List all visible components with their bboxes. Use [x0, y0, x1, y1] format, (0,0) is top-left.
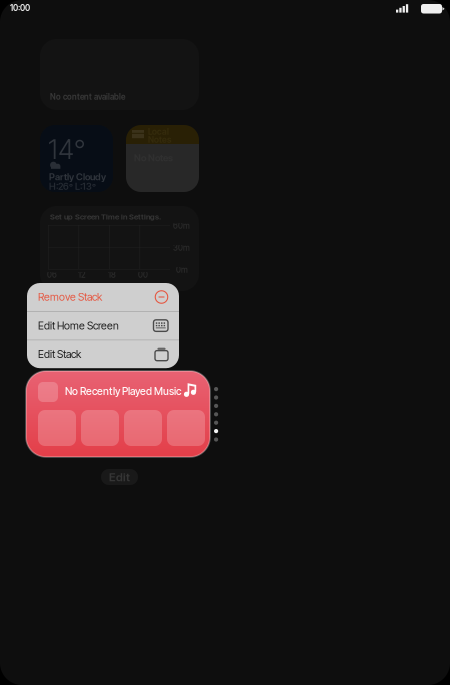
- staticText: 30m: [173, 243, 190, 253]
- staticText: No Recently Played Music: [65, 385, 181, 398]
- staticText: 06: [47, 270, 57, 280]
- staticText: H:26° L:13°: [49, 180, 96, 192]
- staticText: 12: [78, 270, 86, 280]
- staticText: 14°: [48, 133, 85, 166]
- staticText: 0m: [176, 265, 188, 275]
- staticText: Notes: [148, 134, 171, 145]
- staticText: Partly Cloudy: [49, 171, 106, 182]
- button[interactable]: Edit Stack: [27, 340, 179, 368]
- staticText: Edit: [109, 470, 130, 484]
- staticText: No content available: [50, 92, 125, 102]
- staticText: 10:00: [10, 3, 30, 13]
- button[interactable]: Remove Stack: [27, 283, 179, 311]
- staticText: --: [167, 280, 173, 290]
- staticText: Edit Stack: [38, 348, 81, 361]
- button[interactable]: Edit: [101, 469, 138, 485]
- button[interactable]: Edit Home Screen: [27, 312, 179, 340]
- staticText: Set up Screen Time in Settings.: [50, 212, 161, 221]
- staticText: 00: [138, 270, 148, 280]
- staticText: 18: [108, 270, 116, 280]
- staticText: Remove Stack: [38, 291, 102, 303]
- staticText: Edit Home Screen: [38, 319, 119, 332]
- staticText: 60m: [173, 221, 190, 231]
- button[interactable]: No Recently Played Music: [26, 371, 210, 457]
- staticText: Local: [148, 126, 169, 137]
- staticText: --: [108, 280, 114, 290]
- staticText: --: [49, 280, 55, 290]
